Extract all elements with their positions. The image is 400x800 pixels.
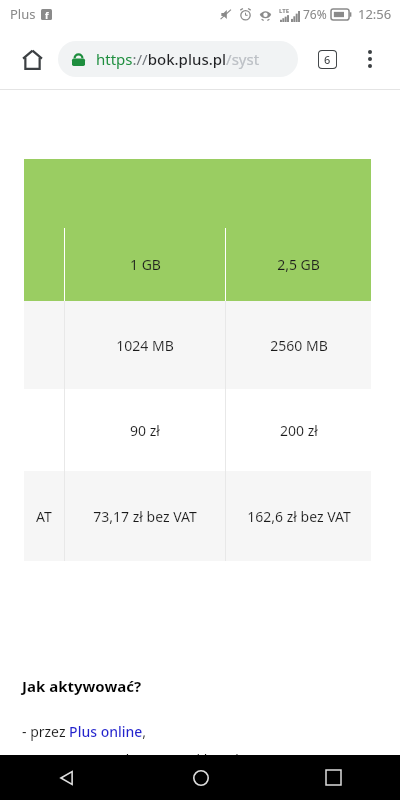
staticText: 2,5 GB: [277, 255, 320, 274]
staticText: 6: [324, 52, 331, 67]
staticText: 2560 MB: [270, 336, 328, 355]
staticText: Plus: [10, 5, 36, 23]
button[interactable]: - przez Plus online,: [22, 722, 147, 741]
staticText: https://bok.plus.pl/syst: [96, 49, 260, 69]
staticText: f: [45, 9, 49, 20]
button[interactable]: Home: [134, 755, 267, 800]
staticText: 90 zł: [130, 421, 160, 440]
button[interactable]: More options: [348, 37, 392, 81]
staticText: 73,17 zł bez VAT: [93, 507, 197, 526]
button[interactable]: Home: [8, 35, 56, 83]
staticText: AT: [36, 507, 52, 526]
button[interactable]: https://bok.plus.pl/syst: [58, 41, 298, 77]
staticText: 200 zł: [280, 421, 318, 440]
staticText: - przez SMS wysłanego pod bezpłatny nume…: [22, 750, 351, 769]
staticText: 162,6 zł bez VAT: [247, 507, 351, 526]
staticText: 1 GB: [130, 255, 161, 274]
staticText: LTE: [279, 7, 290, 15]
button[interactable]: Recent apps: [267, 755, 400, 800]
button[interactable]: Tabs, 6 open: [306, 38, 348, 80]
staticText: 76%: [303, 6, 327, 22]
button[interactable]: Back: [0, 755, 134, 800]
staticText: 1024 MB: [116, 336, 174, 355]
staticText: 12:56: [358, 5, 392, 23]
staticText: Jak aktywować?: [22, 676, 142, 696]
